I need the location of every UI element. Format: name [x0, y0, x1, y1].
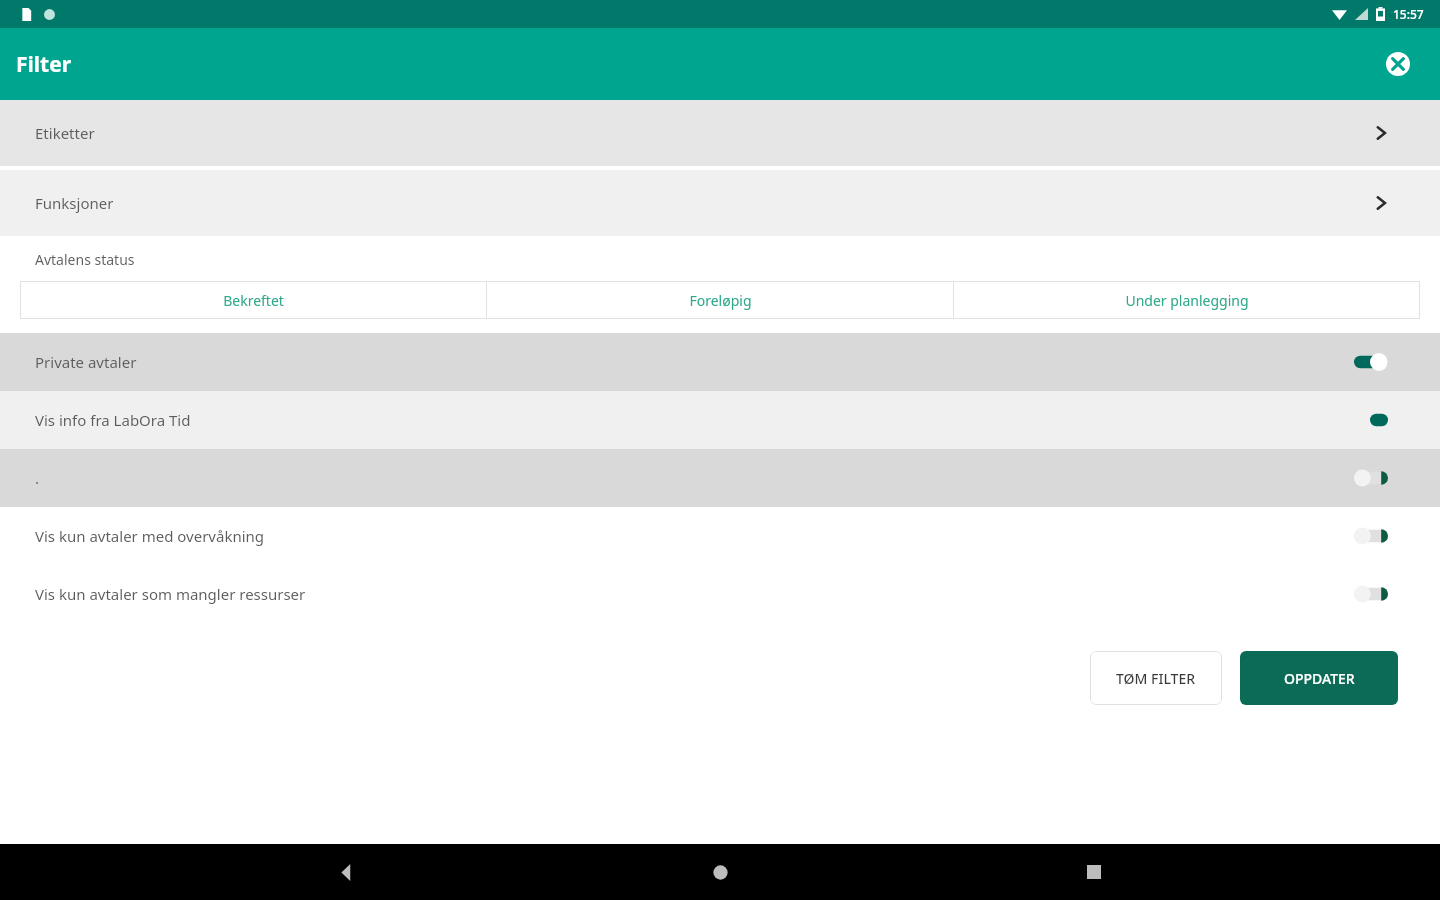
button[interactable]: Home [692, 844, 748, 900]
button[interactable]: Toggle off [1354, 526, 1388, 546]
button[interactable]: Toggle off [1354, 584, 1388, 604]
staticText: Private avtaler [35, 352, 137, 372]
staticText: Funksjoner [35, 193, 114, 213]
button[interactable]: Foreløpig [487, 281, 953, 319]
button[interactable]: Toggle on [1370, 410, 1388, 430]
staticText: OPPDATER [1284, 669, 1355, 688]
button[interactable]: Vis kun avtaler som mangler ressurser [0, 565, 1440, 623]
button[interactable]: Toggle off [1354, 468, 1388, 488]
staticText: Foreløpig [689, 291, 752, 310]
button[interactable]: TØM FILTER [1090, 651, 1222, 705]
staticText: TØM FILTER [1116, 669, 1196, 688]
staticText: Vis info fra LabOra Tid [35, 410, 191, 430]
button[interactable]: OPPDATER [1240, 651, 1398, 705]
button[interactable]: Funksjoner [0, 170, 1440, 236]
button[interactable]: Under planlegging [954, 281, 1420, 319]
staticText: Vis kun avtaler som mangler ressurser [35, 584, 306, 604]
staticText: Filter [16, 50, 72, 79]
button[interactable]: Vis kun avtaler med overvåkning [0, 507, 1440, 565]
staticText: Bekreftet [223, 291, 284, 310]
button[interactable]: Vis info fra LabOra Tid [0, 391, 1440, 449]
staticText: Under planlegging [1125, 291, 1249, 310]
button[interactable]: Etiketter [0, 100, 1440, 166]
button[interactable]: . [0, 449, 1440, 507]
staticText: Avtalens status [35, 250, 135, 269]
staticText: Vis kun avtaler med overvåkning [35, 526, 265, 546]
staticText: . [35, 468, 40, 488]
button[interactable]: Back [318, 844, 374, 900]
button[interactable]: Bekreftet [20, 281, 486, 319]
button[interactable]: Close [1376, 42, 1420, 86]
button[interactable]: Private avtaler [0, 333, 1440, 391]
button[interactable]: Toggle on [1354, 352, 1388, 372]
staticText: 15:57 [1393, 6, 1424, 22]
staticText: Etiketter [35, 123, 95, 143]
button[interactable]: Recents [1066, 844, 1122, 900]
